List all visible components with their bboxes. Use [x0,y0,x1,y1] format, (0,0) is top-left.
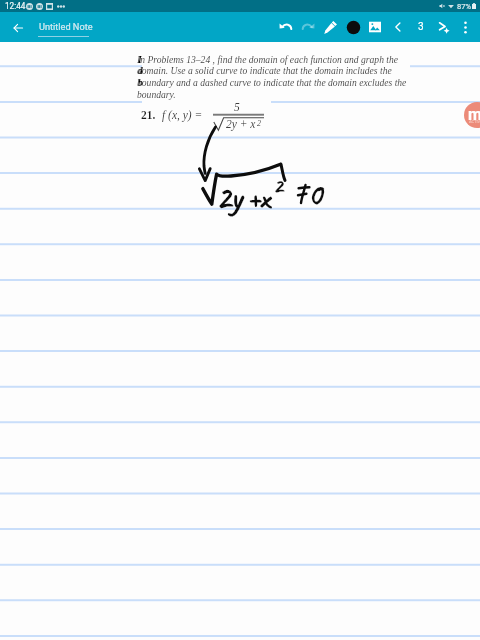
staticText: 2 [216,176,231,218]
staticText: y [230,176,242,219]
staticText: x [259,178,270,217]
staticText: In Problems 13–24 , find the domain of e… [137,54,410,100]
staticText: 21. [141,109,156,122]
button[interactable]: Previous page [386,15,410,39]
button[interactable]: Insert image [363,15,387,39]
button[interactable]: More options [453,15,477,39]
button[interactable]: 3 [410,14,432,40]
staticText: ACTIVE [469,119,480,124]
staticText: 3 [418,21,424,33]
staticText: f (x, y) = [162,109,203,122]
staticText: 2y + x [226,118,256,131]
staticText: 12:44 [5,1,26,11]
button[interactable]: Brush colour [341,15,365,39]
staticText: 5 [234,101,240,114]
button[interactable]: Back [4,14,31,41]
button[interactable]: Undo [273,15,297,39]
button[interactable]: Pen [318,15,342,39]
staticText: 87% [457,2,472,11]
staticText: Untitled Note [39,21,93,32]
staticText: I d b [138,54,143,88]
staticText: 0 [308,174,322,213]
staticText: 2 [273,172,283,200]
staticText: + [247,178,261,216]
staticText: m [468,105,480,124]
button[interactable]: Redo [296,15,320,39]
staticText: 2 [257,119,261,128]
button[interactable]: Share [431,15,455,39]
button[interactable]: Untitled Note [33,15,93,39]
